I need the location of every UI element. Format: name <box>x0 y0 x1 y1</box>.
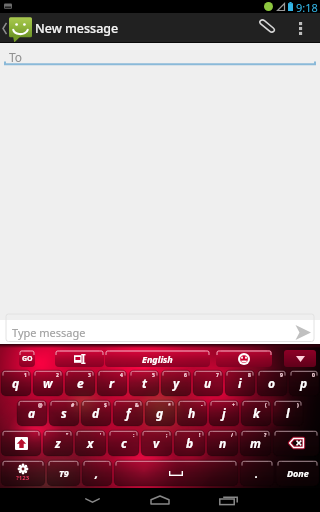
staticText: l <box>286 405 290 421</box>
button[interactable] <box>55 350 104 367</box>
button[interactable]: j <box>209 400 239 426</box>
staticText: u <box>204 375 212 391</box>
staticText: 3 <box>88 372 91 379</box>
button[interactable]: Hide suggestions <box>284 350 316 367</box>
staticText: s <box>61 405 67 421</box>
button[interactable]: c <box>108 430 139 456</box>
staticText: t <box>142 375 147 391</box>
staticText: " <box>66 432 69 439</box>
button[interactable]: , <box>82 460 112 486</box>
button[interactable]: r <box>97 370 127 396</box>
button[interactable]: p <box>289 370 319 396</box>
staticText: d <box>92 405 100 421</box>
staticText: T9 <box>59 467 69 479</box>
button[interactable]: z <box>43 430 73 456</box>
staticText: ? <box>264 432 267 439</box>
staticText: w <box>43 375 53 391</box>
staticText: m <box>250 435 261 451</box>
staticText: q <box>12 375 20 391</box>
button[interactable]: Attach <box>252 13 282 43</box>
staticText: r <box>109 375 115 391</box>
staticText: x <box>87 435 94 451</box>
staticText: ( <box>265 402 267 409</box>
staticText: & <box>135 402 139 409</box>
staticText: 9 <box>280 372 283 379</box>
button[interactable]: More options <box>290 13 312 43</box>
button[interactable]: t <box>129 370 159 396</box>
button[interactable]: f <box>113 400 143 426</box>
button[interactable]: T9 <box>47 460 80 486</box>
staticText: GO <box>22 354 33 364</box>
staticText: ) <box>297 402 299 409</box>
button[interactable]: Shift <box>1 430 41 456</box>
button[interactable]: b <box>174 430 205 456</box>
staticText: 9:18 <box>296 0 318 13</box>
button[interactable]: v <box>141 430 172 456</box>
staticText: Done <box>287 467 309 479</box>
staticText: 1 <box>24 372 27 379</box>
staticText: 2 <box>56 372 59 379</box>
staticText: h <box>188 405 196 421</box>
button[interactable]: u <box>193 370 223 396</box>
staticText: p <box>300 375 308 391</box>
staticText: ?123 <box>16 474 30 482</box>
staticText: . <box>255 466 259 481</box>
button[interactable]: i <box>225 370 255 396</box>
button[interactable]: a <box>17 400 47 426</box>
button[interactable]: s <box>49 400 79 426</box>
staticText: g <box>156 405 164 421</box>
staticText: Type message <box>12 325 86 340</box>
staticText: To <box>9 49 23 65</box>
button[interactable]: GO <box>19 350 35 367</box>
staticText: # <box>71 402 75 409</box>
button[interactable]: g <box>145 400 175 426</box>
staticText: ! <box>199 432 201 439</box>
button[interactable] <box>216 350 272 367</box>
button[interactable]: e <box>65 370 95 396</box>
button[interactable]: Navigate up <box>0 13 32 43</box>
staticText: English <box>142 353 173 365</box>
staticText: i <box>238 375 242 391</box>
button[interactable]: Recent apps <box>203 488 253 512</box>
button[interactable]: h <box>177 400 207 426</box>
staticText: 8 <box>248 372 251 379</box>
staticText: 7 <box>216 372 219 379</box>
staticText: / <box>231 432 234 439</box>
button[interactable]: x <box>75 430 106 456</box>
staticText: - <box>201 402 203 409</box>
staticText: , <box>95 466 99 481</box>
button[interactable]: Hide keyboard <box>67 488 117 512</box>
staticText: 6 <box>184 372 187 379</box>
staticText: ' <box>100 432 102 439</box>
button[interactable]: Space <box>114 460 238 486</box>
button[interactable]: n <box>207 430 238 456</box>
button[interactable]: Settings and symbols <box>1 460 45 486</box>
staticText: 4 <box>120 372 123 379</box>
button[interactable]: English <box>105 350 210 367</box>
button[interactable]: . <box>240 460 274 486</box>
staticText: k <box>253 405 260 421</box>
staticText: b <box>186 435 194 451</box>
button[interactable]: Done <box>276 460 319 486</box>
button[interactable]: m <box>240 430 271 456</box>
staticText: a <box>28 405 36 421</box>
button[interactable]: d <box>81 400 111 426</box>
staticText: y <box>173 375 180 391</box>
staticText: : <box>133 432 135 439</box>
staticText: z <box>55 435 61 451</box>
button[interactable]: y <box>161 370 191 396</box>
button[interactable]: k <box>241 400 271 426</box>
button[interactable]: q <box>1 370 31 396</box>
button[interactable]: l <box>273 400 303 426</box>
staticText: + <box>232 402 235 409</box>
staticText: j <box>222 405 226 421</box>
button[interactable]: Home <box>135 488 185 512</box>
button[interactable]: w <box>33 370 63 396</box>
staticText: 0 <box>312 372 315 379</box>
staticText: * <box>168 402 171 409</box>
staticText: c <box>121 435 127 451</box>
button[interactable]: o <box>257 370 287 396</box>
button[interactable]: Send <box>287 320 319 344</box>
staticText: New message <box>35 20 119 37</box>
button[interactable]: Backspace <box>273 430 319 456</box>
